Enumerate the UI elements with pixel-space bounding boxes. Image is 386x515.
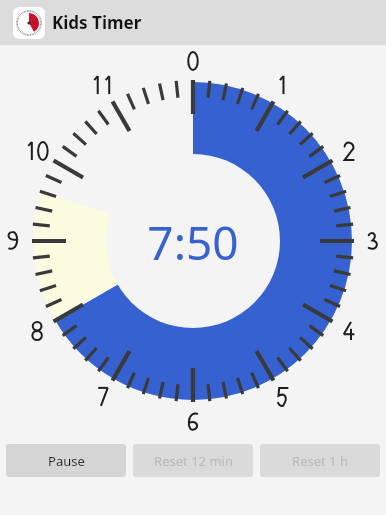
staticText: Pause	[48, 452, 85, 470]
button[interactable]: Reset 12 min	[133, 444, 253, 477]
staticText: Reset 1 h	[292, 452, 348, 470]
other: Kids Timer app icon	[13, 7, 45, 39]
staticText: 7:50	[147, 211, 239, 274]
button[interactable]: Reset 1 h	[260, 444, 380, 477]
staticText: Reset 12 min	[154, 452, 233, 470]
staticText: Kids Timer	[52, 11, 142, 34]
button[interactable]: Pause	[6, 444, 126, 477]
